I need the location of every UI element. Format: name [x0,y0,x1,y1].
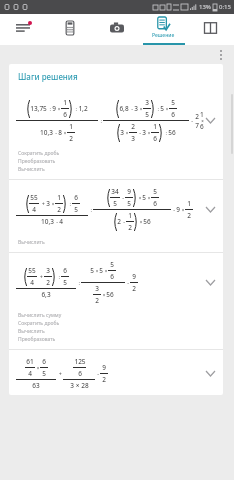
staticText: 55 [28,266,36,275]
staticText: - [189,117,194,124]
staticText: - [95,370,100,377]
staticText: 3 [142,128,146,137]
staticText: 10,3 [40,128,53,137]
staticText: - [54,218,59,225]
staticText: 5 [127,199,131,208]
staticText: 4 [59,217,63,226]
staticText: Решение [152,32,175,39]
staticText: : [98,117,103,124]
staticText: 2 [132,284,136,293]
staticText: 1 [57,193,61,202]
button[interactable]: История [0,14,46,45]
staticText: 5 [110,260,114,269]
staticText: 13,75 [30,104,47,113]
staticText: 5 [63,278,67,287]
staticText: 3 [95,284,99,293]
staticText: 5 [145,110,149,119]
button[interactable]: Развернуть шаг [200,199,220,219]
staticText: × [138,219,143,225]
staticText: 1 [153,122,157,131]
staticText: × [56,106,61,112]
staticText: 5 [90,266,94,275]
staticText: 2 [95,296,99,305]
staticText: : [76,279,81,286]
staticText: 1 [69,122,73,131]
staticText: - [53,129,58,136]
staticText: × [94,268,99,274]
staticText: 125 [74,357,86,366]
staticText: 3 [134,104,138,113]
staticText: × [101,292,106,298]
button[interactable]: 55 [9,180,223,237]
staticText: 1 [128,211,132,220]
staticText: 9 [102,363,106,372]
button[interactable]: Решение [140,14,187,45]
button[interactable]: Развернуть шаг [200,110,220,130]
staticText: Вычислить сумму [18,312,62,319]
staticText: × [62,130,67,136]
staticText: 56 [143,217,151,226]
staticText: 5 [42,369,46,378]
staticText: 9 [127,187,131,196]
staticText: 6 [153,199,157,208]
staticText: 6,3 [41,290,51,299]
staticText: 9 [52,104,56,113]
staticText: × [50,201,55,207]
staticText: × [103,268,108,274]
staticText: + [39,200,46,207]
staticText: 9 [176,205,180,214]
staticText: + [37,273,44,280]
staticText: 6 [42,357,46,366]
staticText: × [180,207,185,213]
staticText: 5 [171,98,175,107]
staticText: 5 [142,193,146,202]
staticText: 6 [63,266,67,275]
staticText: : [56,273,61,280]
staticText: 2 [57,205,61,214]
button[interactable]: Развернуть шаг [200,272,220,292]
staticText: 1 [63,98,67,107]
button[interactable]: 61 [9,350,223,395]
staticText: 2 [46,278,50,287]
staticText: 2 [131,122,135,131]
button[interactable]: 55 [9,253,223,310]
staticText: 9 [132,272,136,281]
staticText: Сократить дробь [18,150,60,157]
staticText: - [137,129,142,136]
staticText: × [124,130,129,136]
staticText: 5 [99,266,103,275]
staticText: Вычислить [18,166,45,173]
staticText: : [47,105,52,112]
staticText: 10,3 [41,217,54,226]
staticText: 2 [102,375,106,384]
staticText: 2 [187,211,191,220]
staticText: × [146,130,151,136]
button[interactable]: Развернуть шаг [200,363,220,383]
staticText: 1,2 [78,104,88,113]
staticText: - [125,279,130,286]
button[interactable]: Камера [93,14,140,45]
staticText: × [35,365,40,371]
staticText: - [129,105,134,112]
staticText: - [120,194,125,201]
button[interactable]: 13,75 [9,91,223,148]
staticText: × [138,106,143,112]
button[interactable]: Справочник [187,14,234,45]
staticText: : [88,206,93,213]
staticText: Сократить дробь [18,320,60,327]
staticText: 55 [30,193,38,202]
staticText: 3 [131,134,135,143]
staticText: 4 [32,205,36,214]
staticText: 0:15 [219,3,231,11]
staticText: Преобразовать [18,158,56,165]
staticText: 27 [194,112,200,130]
staticText: 5 [113,199,117,208]
button[interactable]: Калькулятор [46,14,93,45]
staticText: × [137,195,142,201]
staticText: 6 [63,110,67,119]
staticText: 6 [110,272,114,281]
button[interactable]: Ещё [211,45,231,64]
staticText: : [163,129,168,136]
staticText: 4 [28,369,32,378]
staticText: 5 [153,187,157,196]
